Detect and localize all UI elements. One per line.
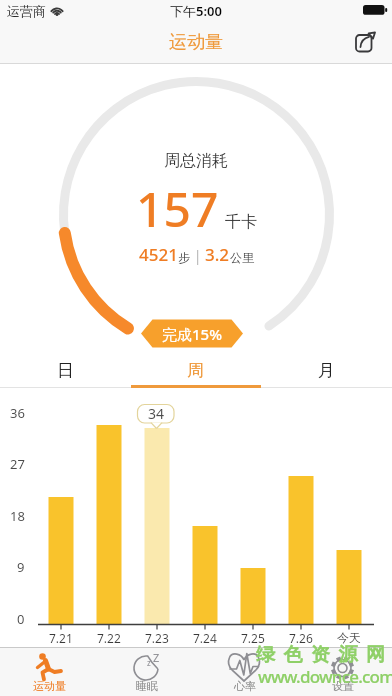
- button[interactable]: 设置: [294, 647, 392, 696]
- staticText: 周: [187, 360, 204, 381]
- staticText: 36: [10, 404, 25, 420]
- staticText: 4521: [139, 243, 178, 263]
- staticText: 7.21: [49, 630, 73, 645]
- button[interactable]: [350, 28, 382, 60]
- staticText: 月: [318, 360, 335, 381]
- staticText: 7.23: [145, 630, 169, 645]
- staticText: 7.26: [289, 630, 313, 645]
- staticText: 34: [148, 404, 165, 423]
- staticText: 运营商: [7, 3, 46, 19]
- staticText: 运动量: [169, 31, 223, 54]
- staticText: 157: [136, 176, 219, 234]
- staticText: 公里: [230, 250, 254, 265]
- staticText: 7.22: [97, 630, 121, 645]
- button[interactable]: 月: [261, 356, 392, 384]
- staticText: 心率: [234, 679, 256, 693]
- button[interactable]: 心率: [196, 647, 294, 696]
- staticText: 步: [178, 250, 190, 265]
- staticText: 0: [17, 610, 25, 626]
- staticText: Z: [153, 650, 160, 665]
- staticText: 18: [10, 507, 25, 523]
- staticText: 今天: [337, 630, 361, 645]
- staticText: 7.25: [241, 630, 265, 645]
- button[interactable]: 运动量: [0, 647, 98, 696]
- staticText: 日: [57, 360, 74, 381]
- staticText: 睡眠: [136, 679, 158, 693]
- staticText: 运动量: [33, 679, 66, 693]
- staticText: 7.24: [193, 630, 217, 645]
- staticText: z: [147, 657, 151, 668]
- button[interactable]: 睡眠: [98, 647, 196, 696]
- staticText: 27: [10, 455, 25, 471]
- staticText: 千卡: [225, 212, 257, 232]
- staticText: 3.2: [205, 243, 230, 263]
- button[interactable]: 周: [130, 356, 261, 384]
- staticText: 完成15%: [162, 324, 222, 344]
- button[interactable]: 日: [0, 356, 130, 384]
- staticText: 绿色资源网: [256, 643, 392, 667]
- staticText: |: [190, 246, 205, 265]
- staticText: 设置: [332, 679, 354, 693]
- staticText: 下午5:00: [170, 2, 222, 19]
- staticText: 9: [17, 558, 25, 574]
- staticText: www.downce.com: [258, 665, 392, 688]
- staticText: 周总消耗: [164, 151, 228, 171]
